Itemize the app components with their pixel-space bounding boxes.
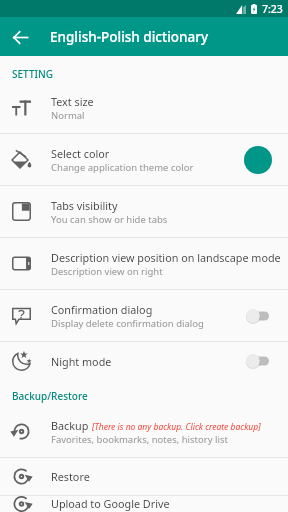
staticText: Backup/Restore [12, 389, 88, 403]
button[interactable]: Confirmation dialog [0, 290, 288, 341]
staticText: Restore [51, 469, 90, 484]
staticText: You can show or hide tabs [51, 213, 168, 226]
staticText: [There is no any backup. Click create ba… [92, 421, 261, 433]
staticText: SETTING [12, 67, 54, 81]
staticText: Description view position on landscape m… [51, 250, 281, 265]
button[interactable]: Toggle [246, 308, 269, 324]
staticText: Description view on right [51, 265, 163, 278]
button[interactable]: Navigate up [6, 23, 34, 51]
button[interactable]: Description view position on landscape m… [0, 238, 288, 289]
staticText: Tabs visibility [51, 198, 118, 213]
staticText: Display delete confirmation dialog [51, 317, 204, 330]
button[interactable]: Text size [0, 82, 288, 133]
button[interactable]: Restore [0, 458, 288, 495]
staticText: English-Polish dictionary [50, 28, 209, 46]
staticText: Favorites, bookmarks, notes, history lis… [51, 433, 228, 446]
staticText: Change application theme color [51, 161, 194, 174]
staticText: Backup [51, 418, 89, 433]
button[interactable]: Select color [0, 134, 288, 185]
button[interactable]: Tabs visibility [0, 186, 288, 237]
button[interactable]: Toggle [246, 353, 269, 369]
staticText: Select color [51, 146, 110, 161]
button[interactable]: Night mode [0, 342, 288, 380]
staticText: Confirmation dialog [51, 302, 153, 317]
staticText: Night mode [51, 354, 112, 369]
button[interactable]: Upload to Google Drive [0, 496, 288, 512]
staticText: Normal [51, 109, 85, 122]
staticText: Text size [51, 94, 94, 109]
staticText: 7:23 [262, 2, 283, 16]
button[interactable]: Backup [0, 406, 288, 457]
staticText: Upload to Google Drive [51, 496, 170, 511]
